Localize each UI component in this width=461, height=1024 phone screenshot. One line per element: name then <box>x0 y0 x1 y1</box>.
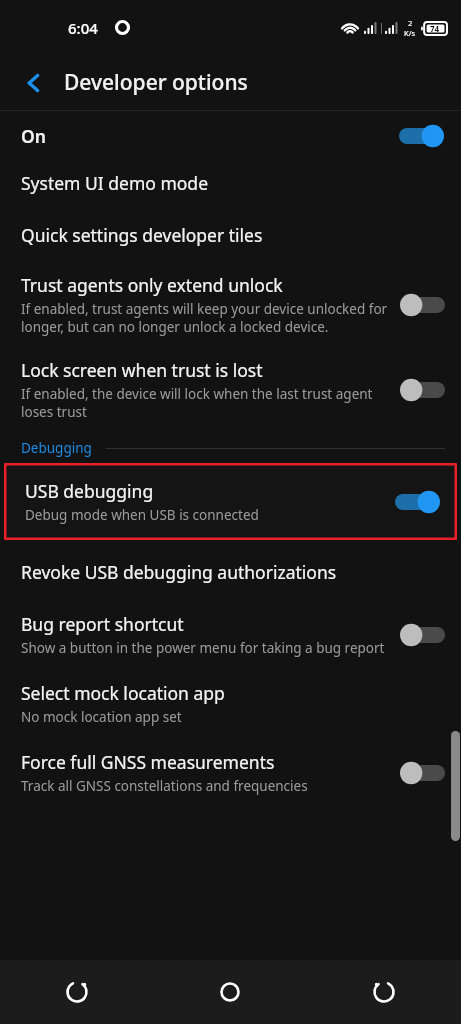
staticText: No mock location app set <box>21 708 182 726</box>
button[interactable]: Bug report shortcut <box>0 600 461 669</box>
staticText: 6:04 <box>68 18 98 38</box>
button[interactable]: Back <box>12 61 56 105</box>
staticText: Bug report shortcut <box>21 612 184 636</box>
staticText: Debug mode when USB is connected <box>25 506 259 524</box>
staticText: Trust agents only extend unlock <box>21 273 283 297</box>
button[interactable]: Force full GNSS measurements <box>0 738 461 807</box>
staticText: On <box>21 124 46 148</box>
staticText: Debugging <box>21 439 92 457</box>
button[interactable]: Recents <box>0 960 153 1024</box>
button[interactable]: Home <box>153 960 307 1024</box>
staticText: Select mock location app <box>21 681 225 705</box>
button[interactable]: On <box>0 111 461 161</box>
staticText: Quick settings developer tiles <box>21 223 263 247</box>
staticText: Track all GNSS constellations and freque… <box>21 777 308 795</box>
button[interactable]: Select mock location app <box>0 669 461 738</box>
staticText: Developer options <box>64 68 248 97</box>
staticText: USB debugging <box>25 479 154 503</box>
staticText: If enabled, trust agents will keep your … <box>21 300 389 336</box>
staticText: 2 <box>408 18 413 28</box>
staticText: System UI demo mode <box>21 171 209 195</box>
button[interactable]: System UI demo mode <box>0 161 461 209</box>
button[interactable]: Back <box>307 960 461 1024</box>
staticText: Force full GNSS measurements <box>21 750 275 774</box>
button[interactable]: Lock screen when trust is lost <box>0 348 461 433</box>
staticText: If enabled, the device will lock when th… <box>21 385 389 421</box>
staticText: Lock screen when trust is lost <box>21 358 263 382</box>
staticText: 74 <box>430 23 440 34</box>
button[interactable]: USB debugging <box>4 463 457 540</box>
staticText: Revoke USB debugging authorizations <box>21 560 337 584</box>
button[interactable]: Revoke USB debugging authorizations <box>0 542 461 600</box>
staticText: K/s <box>404 28 416 38</box>
staticText: Show a button in the power menu for taki… <box>21 639 385 657</box>
button[interactable]: Trust agents only extend unlock <box>0 261 461 348</box>
button[interactable]: Quick settings developer tiles <box>0 209 461 261</box>
